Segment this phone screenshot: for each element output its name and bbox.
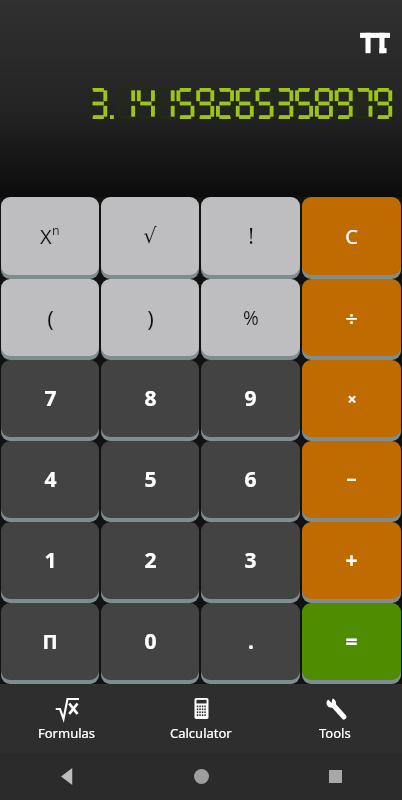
staticText: 9 [244,384,257,413]
staticText: ÷ [345,303,358,333]
button[interactable]: 1 [1,522,99,599]
button[interactable]: 9 [201,360,300,437]
button[interactable]: × [302,360,401,437]
button[interactable]: 3 [201,522,300,599]
button[interactable]: ( [1,279,99,356]
staticText: 8 [144,384,157,413]
staticText: Formulas [38,724,96,742]
staticText: ( [47,303,54,333]
staticText: 1 [44,546,57,575]
staticText: 6 [244,465,257,494]
button[interactable]: ) [101,279,199,356]
staticText: Tools [319,724,351,742]
button[interactable]: ÷ [302,279,401,356]
button[interactable]: Pi [358,26,392,60]
button[interactable]: 8 [101,360,199,437]
staticText: n [52,222,60,239]
staticText: √ [143,224,157,248]
button[interactable]: % [201,279,300,356]
staticText: X [40,223,52,250]
button[interactable]: 0 [101,603,199,680]
button[interactable]: Back [0,753,134,800]
staticText: + [345,546,358,575]
button[interactable]: 6 [201,441,300,518]
button[interactable]: 5 [101,441,199,518]
button[interactable]: 7 [1,360,99,437]
button[interactable]: Recents [268,753,402,800]
staticText: − [346,467,357,492]
button[interactable]: Home [134,753,268,800]
button[interactable]: . [201,603,300,680]
staticText: ) [147,303,154,333]
staticText: = [345,627,358,656]
button[interactable]: − [302,441,401,518]
staticText: 0 [144,627,157,656]
button[interactable]: = [302,603,401,680]
button[interactable]: C [302,197,401,275]
staticText: × [347,388,357,410]
button[interactable]: √ [101,197,199,275]
staticText: Calculator [170,724,232,742]
button[interactable]: 2 [101,522,199,599]
button[interactable]: X [1,197,99,275]
button[interactable]: Tools [268,684,402,753]
staticText: 5 [144,465,157,494]
staticText: 4 [44,465,57,494]
button[interactable]: Calculator [134,684,268,753]
button[interactable]: + [302,522,401,599]
button[interactable]: ! [201,197,300,275]
staticText: Π [42,628,58,655]
button[interactable]: 4 [1,441,99,518]
staticText: 3 [244,546,257,575]
staticText: 2 [144,546,157,575]
staticText: % [243,305,259,331]
staticText: . [248,627,254,656]
button[interactable]: Formulas [0,684,134,753]
staticText: 7 [44,384,57,413]
staticText: C [345,223,358,250]
button[interactable]: Π [1,603,99,680]
staticText: ! [248,222,254,251]
